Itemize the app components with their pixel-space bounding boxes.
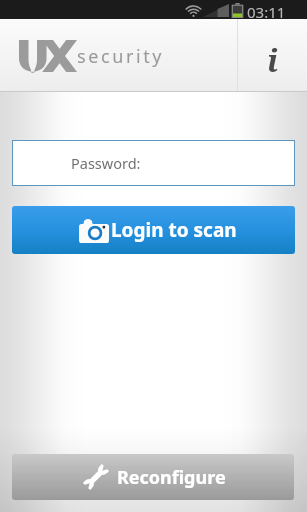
staticText: Reconfigure bbox=[117, 465, 226, 490]
button[interactable]: Info bbox=[238, 19, 307, 92]
staticText: Login to scan bbox=[111, 217, 237, 243]
button[interactable]: Password: bbox=[12, 140, 295, 186]
staticText: Password: bbox=[71, 153, 141, 173]
staticText: i bbox=[267, 39, 278, 81]
staticText: 03:11 bbox=[247, 2, 286, 21]
button[interactable]: Reconfigure bbox=[12, 454, 294, 500]
button[interactable]: Login to scan bbox=[12, 206, 295, 254]
staticText: security bbox=[77, 44, 165, 69]
